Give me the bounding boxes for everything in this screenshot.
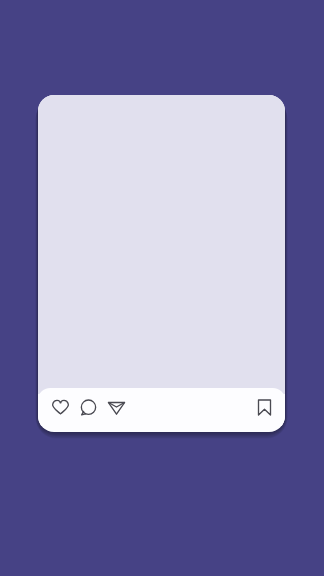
button[interactable]: Like — [38, 95, 285, 432]
button[interactable]: Like — [46, 393, 74, 421]
button[interactable]: Comment — [74, 393, 102, 421]
button[interactable]: Save — [250, 393, 278, 421]
button[interactable]: Share — [102, 393, 130, 421]
